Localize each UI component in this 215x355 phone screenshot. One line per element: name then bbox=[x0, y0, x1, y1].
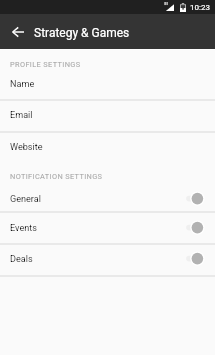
staticText: NOTIFICATION SETTINGS bbox=[10, 172, 103, 181]
button[interactable]: Navigate up bbox=[6, 20, 29, 43]
button[interactable]: Toggle Deals bbox=[186, 252, 203, 266]
button[interactable]: Toggle General bbox=[186, 192, 203, 206]
staticText: PROFILE SETTINGS bbox=[10, 60, 81, 69]
staticText: Name bbox=[10, 79, 35, 90]
staticText: Strategy & Games bbox=[34, 26, 130, 40]
staticText: Deals bbox=[10, 254, 33, 265]
button[interactable]: Toggle Events bbox=[186, 221, 203, 235]
button[interactable]: Email bbox=[0, 99, 215, 131]
staticText: Events bbox=[10, 223, 37, 234]
button[interactable]: General bbox=[0, 183, 215, 215]
button[interactable]: Website bbox=[0, 131, 215, 163]
button[interactable]: Deals bbox=[0, 243, 215, 275]
staticText: General bbox=[10, 194, 41, 205]
staticText: Email bbox=[10, 110, 33, 121]
button[interactable]: Name bbox=[0, 68, 215, 100]
button[interactable]: Events bbox=[0, 212, 215, 244]
staticText: 10:23 bbox=[190, 3, 210, 12]
staticText: Website bbox=[10, 142, 43, 153]
